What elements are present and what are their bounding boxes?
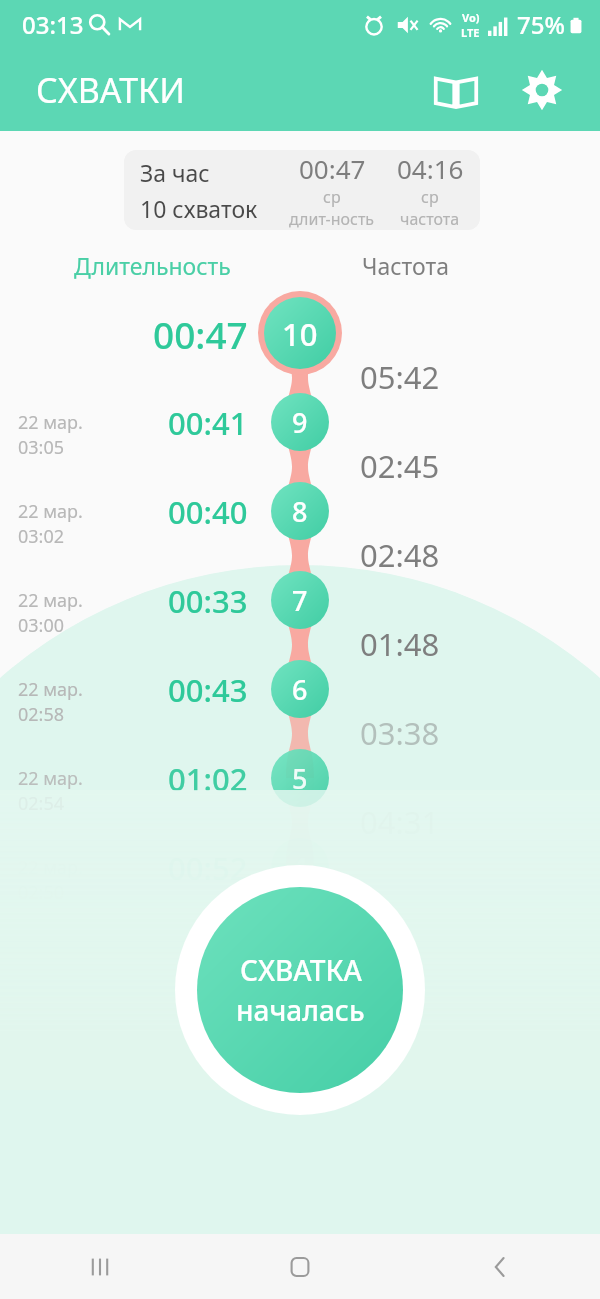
staticText: 8	[292, 493, 308, 530]
button[interactable]: За час	[124, 150, 480, 230]
staticText: длит-ность	[289, 208, 375, 230]
staticText: началась	[236, 991, 365, 1029]
staticText: частота	[400, 208, 460, 230]
staticText: 00:52	[168, 847, 248, 889]
staticText: 10 схваток	[140, 193, 258, 224]
staticText: 01:48	[360, 623, 440, 665]
staticText: 02:48	[360, 534, 440, 576]
staticText: 04:16	[397, 151, 464, 186]
button[interactable]: Settings	[506, 54, 578, 126]
staticText: 22 мар.	[18, 499, 83, 524]
staticText: 00:47	[299, 151, 366, 186]
staticText: LTE	[461, 25, 480, 40]
staticText: 03:05	[18, 435, 65, 460]
staticText: 00:43	[168, 669, 248, 711]
staticText: 7	[292, 582, 308, 619]
staticText: 03:00	[18, 613, 65, 638]
staticText: 00:33	[168, 580, 248, 622]
staticText: 00:47	[153, 309, 248, 359]
staticText: 6	[292, 671, 308, 708]
staticText: 22 мар.	[18, 766, 83, 791]
staticText: ср	[421, 186, 439, 208]
staticText: 22 мар.	[18, 677, 83, 702]
staticText: 00:40	[168, 491, 248, 533]
staticText: 00:41	[168, 402, 248, 444]
staticText: 9	[292, 404, 308, 441]
staticText: 22 мар.	[18, 410, 83, 435]
button[interactable]: Home	[200, 1234, 400, 1299]
staticText: За час	[140, 157, 210, 188]
staticText: 10	[282, 313, 318, 355]
staticText: 75%	[517, 8, 565, 41]
staticText: СХВАТКА	[240, 951, 362, 989]
staticText: Vo)	[462, 10, 480, 25]
button[interactable]: СХВАТКА	[175, 865, 425, 1115]
staticText: 01:02	[168, 758, 248, 800]
staticText: СХВАТКИ	[36, 67, 186, 113]
staticText: 5	[292, 760, 308, 797]
staticText: 02:45	[360, 445, 440, 487]
staticText: ср	[323, 186, 341, 208]
staticText: 03:13	[22, 8, 84, 41]
button[interactable]: Back	[400, 1234, 600, 1299]
staticText: 22 мар.	[18, 588, 83, 613]
staticText: Частота	[362, 250, 449, 281]
staticText: 4	[292, 849, 308, 886]
staticText: 03:02	[18, 524, 65, 549]
staticText: Длительность	[74, 250, 231, 281]
staticText: 02:58	[18, 702, 65, 727]
staticText: 03:38	[360, 712, 440, 754]
staticText: 02:54	[18, 791, 65, 816]
button[interactable]: Guide	[420, 54, 492, 126]
button[interactable]: Recents	[0, 1234, 200, 1299]
staticText: 05:42	[360, 356, 440, 398]
